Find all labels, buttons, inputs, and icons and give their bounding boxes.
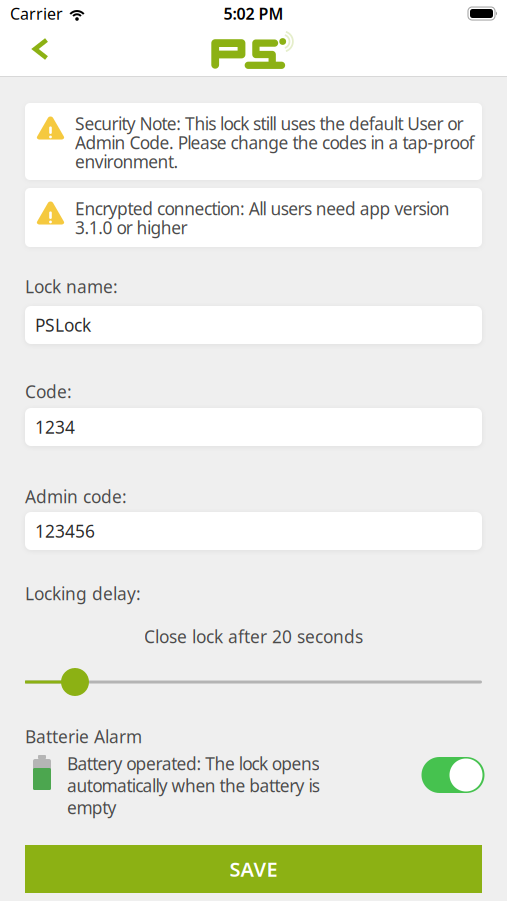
button[interactable]: SAVE	[25, 845, 482, 893]
button[interactable]: 1234	[25, 408, 482, 446]
staticText: environment.	[75, 150, 178, 173]
staticText: SAVE	[229, 856, 277, 882]
staticText: Code:	[25, 380, 72, 395]
staticText: Lock name:	[25, 275, 118, 290]
staticText: Close lock after 20 seconds	[144, 625, 363, 640]
staticText: automatically when the battery is	[67, 774, 320, 797]
staticText: 1234	[35, 415, 75, 438]
staticText: PSLock	[35, 313, 91, 336]
staticText: Batterie Alarm	[25, 725, 142, 740]
staticText: 5:02 PM	[223, 3, 283, 24]
staticText: Battery operated: The lock opens	[67, 752, 319, 775]
button[interactable]	[421, 757, 484, 793]
staticText: Admin Code. Please change the codes in a…	[75, 131, 475, 154]
staticText: 123456	[35, 519, 95, 542]
staticText: empty	[67, 796, 117, 819]
staticText: Security Note: This lock still uses the …	[75, 112, 464, 135]
button[interactable]	[0, 41, 50, 64]
staticText: Carrier	[10, 3, 63, 24]
button[interactable]: PSLock	[25, 306, 482, 344]
staticText: 3.1.0 or higher	[75, 216, 188, 239]
staticText: Encrypted connection: All users need app…	[75, 197, 450, 220]
button[interactable]: 123456	[25, 512, 482, 550]
staticText: Locking delay:	[25, 582, 141, 597]
staticText: Admin code:	[25, 485, 127, 500]
